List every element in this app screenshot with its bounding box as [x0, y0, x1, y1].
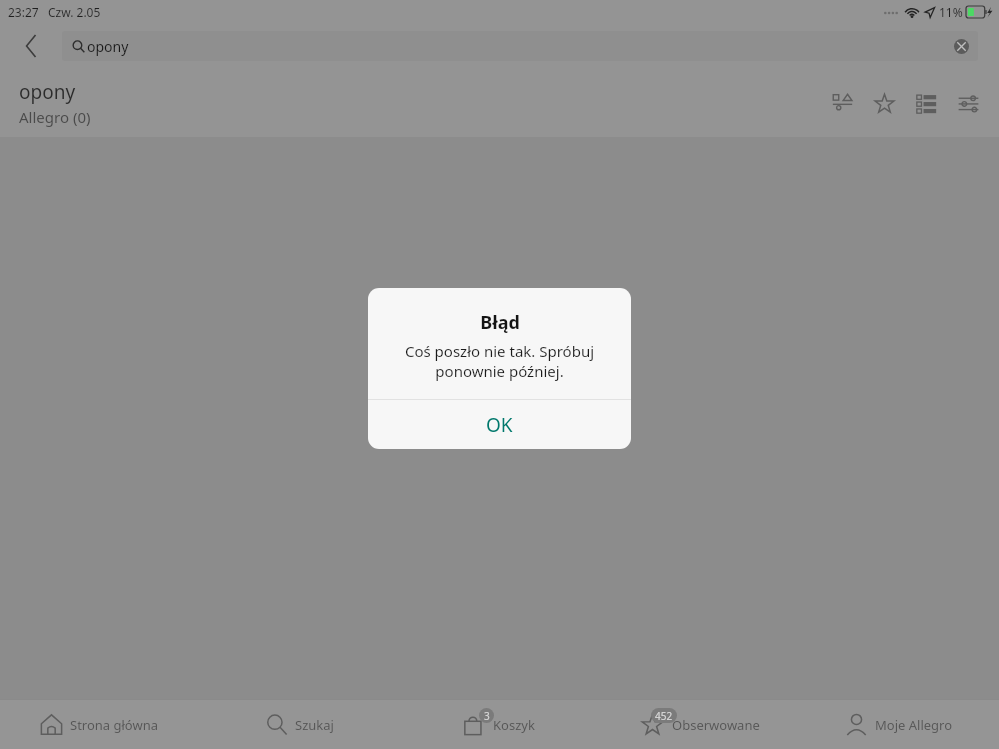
staticText: Allegro (0)	[19, 107, 91, 127]
staticText: Moje Allegro	[875, 716, 953, 734]
staticText: OK	[486, 412, 513, 438]
button[interactable]: Back	[12, 26, 52, 66]
staticText: Coś poszło nie tak. Spróbuj ponownie póź…	[382, 341, 617, 381]
button[interactable]: opony	[62, 31, 978, 61]
button[interactable]: Favourites	[863, 82, 905, 124]
button[interactable]: Compare	[821, 82, 863, 124]
staticText: 3	[484, 709, 490, 723]
button[interactable]: Moje Allegro	[799, 700, 999, 749]
button[interactable]: 3	[399, 700, 599, 749]
staticText: 23:27	[8, 4, 39, 20]
button[interactable]: 452	[599, 700, 799, 749]
staticText: Obserwowane	[672, 716, 760, 734]
staticText: Koszyk	[493, 716, 535, 734]
staticText: opony	[19, 79, 76, 105]
button[interactable]: Filters	[947, 82, 989, 124]
staticText: 11%	[939, 4, 963, 20]
button[interactable]: Clear search	[950, 35, 972, 57]
staticText: Szukaj	[295, 716, 334, 734]
button[interactable]: Strona główna	[0, 700, 199, 749]
staticText: Strona główna	[70, 716, 159, 734]
button[interactable]: Szukaj	[199, 700, 399, 749]
button[interactable]: Change view	[905, 82, 947, 124]
staticText: Czw. 2.05	[48, 4, 101, 20]
staticText: Błąd	[480, 310, 520, 335]
button[interactable]: OK	[368, 400, 631, 449]
staticText: 452	[655, 709, 673, 723]
staticText: opony	[87, 37, 129, 56]
